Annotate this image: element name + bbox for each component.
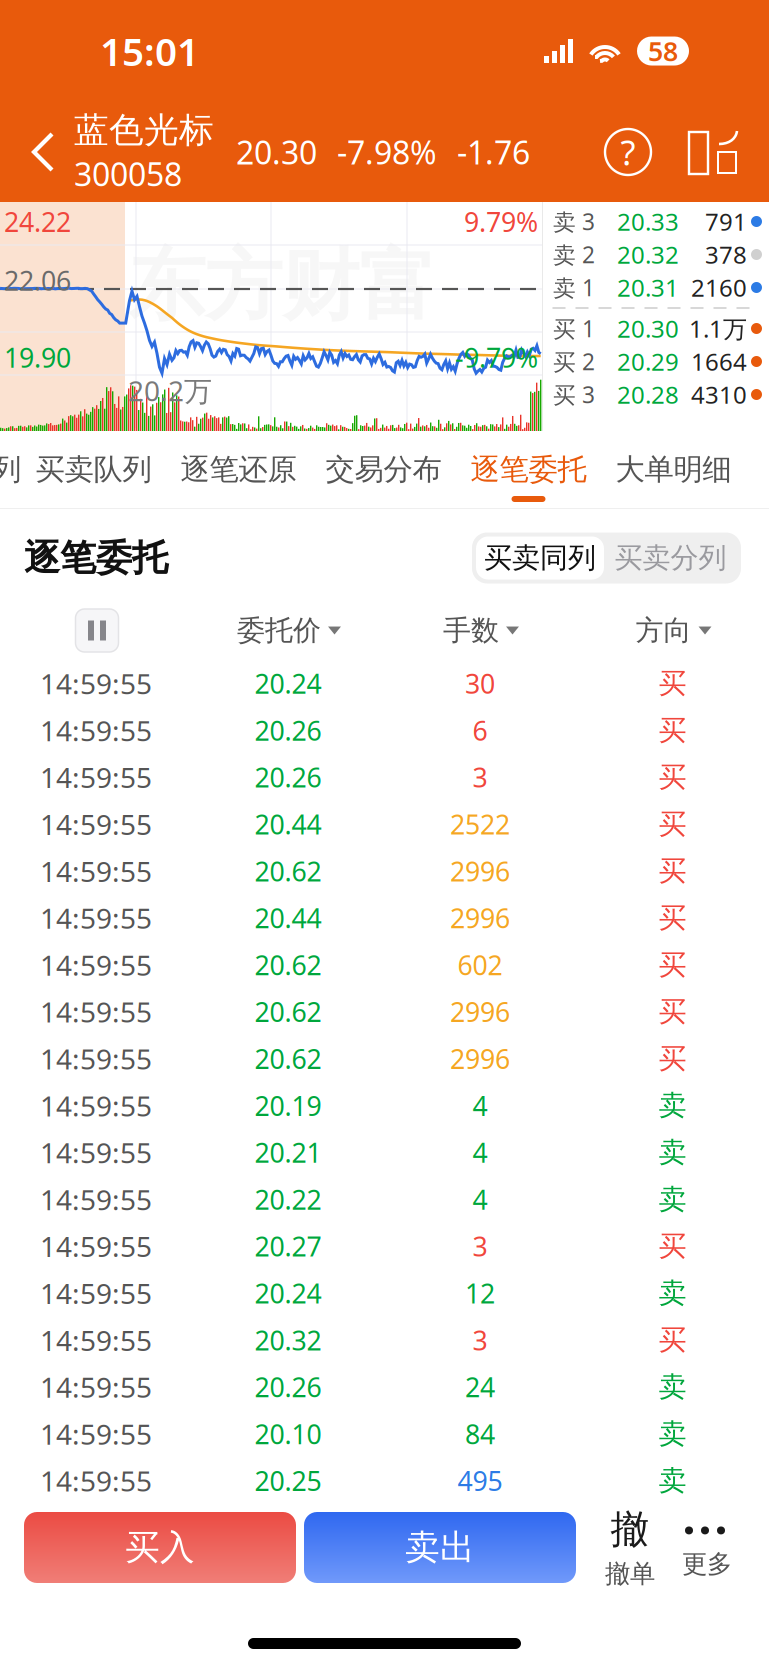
staticText: -1.76: [457, 131, 530, 173]
staticText: 交易分布: [325, 451, 441, 487]
staticText: 14:59:55: [40, 665, 152, 702]
button[interactable]: 大单明细: [601, 431, 746, 508]
staticText: 20.33: [617, 206, 679, 237]
staticText: 20.31: [617, 272, 679, 303]
staticText: 20.62: [254, 947, 321, 982]
staticText: 20.10: [254, 1416, 321, 1451]
staticText: 买: [658, 1323, 686, 1357]
staticText: 卖: [658, 1135, 686, 1170]
staticText: 14:59:55: [40, 1087, 152, 1124]
button[interactable]: 买卖分列: [604, 536, 737, 579]
staticText: 20.19: [254, 1088, 321, 1123]
staticText: 卖: [658, 1088, 686, 1123]
staticText: 买 1: [553, 313, 595, 343]
staticText: 12: [465, 1275, 495, 1311]
staticText: 20.22: [254, 1182, 321, 1217]
staticText: 买: [658, 995, 686, 1029]
staticText: 卖 2: [553, 239, 595, 269]
button[interactable]: 方向: [635, 613, 711, 648]
staticText: 买: [658, 1041, 686, 1076]
button[interactable]: 委托价: [237, 613, 341, 648]
staticText: 20.2万: [128, 372, 212, 409]
staticText: 20.29: [617, 346, 679, 377]
staticText: 4: [472, 1135, 487, 1170]
staticText: 30: [465, 666, 495, 701]
staticText: 手数: [443, 613, 499, 648]
staticText: 买: [658, 948, 686, 982]
staticText: 买入: [125, 1526, 195, 1569]
button[interactable]: 买卖同列: [476, 536, 604, 579]
staticText: 20.44: [254, 900, 321, 936]
staticText: 20.24: [254, 666, 321, 701]
staticText: 4310: [691, 379, 747, 410]
staticText: 3: [472, 1322, 487, 1358]
staticText: 20.24: [254, 1275, 321, 1311]
button[interactable]: 更多: [667, 1515, 747, 1579]
staticText: 1664: [691, 346, 747, 377]
staticText: 14:59:55: [40, 1134, 152, 1171]
button[interactable]: 买卖队列: [21, 431, 166, 508]
button[interactable]: Help: [605, 129, 651, 175]
staticText: 15:01: [100, 25, 199, 77]
staticText: 602: [457, 947, 502, 982]
staticText: 22.06: [4, 263, 71, 298]
staticText: 58: [648, 33, 678, 69]
staticText: 4: [472, 1182, 487, 1217]
staticText: 20.25: [254, 1463, 321, 1498]
staticText: 1.1万: [689, 313, 747, 344]
button[interactable]: 撤: [593, 1506, 667, 1589]
staticText: 卖: [658, 1182, 686, 1217]
staticText: 14:59:55: [40, 1275, 152, 1312]
staticText: 2996: [450, 853, 510, 889]
staticText: 委托价: [237, 613, 321, 648]
staticText: 买: [658, 901, 686, 935]
staticText: 买 3: [553, 379, 595, 409]
staticText: 20.27: [254, 1228, 321, 1264]
staticText: 撤单: [605, 1558, 655, 1589]
staticText: 20.30: [617, 313, 679, 344]
staticText: -7.98%: [337, 131, 437, 173]
staticText: 2996: [450, 1041, 510, 1076]
staticText: 14:59:55: [40, 1228, 152, 1265]
staticText: 3: [472, 759, 487, 795]
staticText: 84: [465, 1416, 495, 1451]
button[interactable]: Pause: [75, 609, 118, 652]
button[interactable]: 卖出: [304, 1512, 576, 1583]
staticText: 3: [472, 1228, 487, 1264]
staticText: 买: [658, 666, 686, 701]
staticText: 495: [457, 1463, 502, 1498]
staticText: 14:59:55: [40, 1181, 152, 1218]
staticText: 买 2: [553, 346, 595, 376]
staticText: 4: [472, 1088, 487, 1123]
staticText: 大单明细: [615, 451, 731, 487]
staticText: 卖: [658, 1276, 686, 1310]
staticText: 卖: [658, 1417, 686, 1451]
staticText: 买: [658, 854, 686, 888]
staticText: 买卖队列: [35, 451, 151, 487]
staticText: 14:59:55: [40, 899, 152, 937]
staticText: 蓝色光标: [74, 109, 214, 152]
staticText: 20.32: [254, 1322, 321, 1358]
button[interactable]: 买入: [24, 1512, 296, 1583]
staticText: 20.62: [254, 853, 321, 889]
staticText: 更多: [682, 1548, 732, 1579]
button[interactable]: 逐笔委托: [456, 431, 601, 508]
staticText: 买卖分列: [614, 541, 726, 575]
button[interactable]: 交易分布: [311, 431, 456, 508]
staticText: 378: [705, 239, 747, 270]
staticText: 方向: [635, 613, 691, 648]
button[interactable]: 手数: [443, 613, 519, 648]
button[interactable]: 逐笔还原: [166, 431, 311, 508]
staticText: 14:59:55: [40, 946, 152, 983]
staticText: 20.26: [254, 1369, 321, 1405]
staticText: 19.90: [4, 340, 71, 375]
staticText: 20.30: [236, 131, 317, 173]
staticText: 逐笔委托: [24, 536, 168, 580]
button[interactable]: Back: [12, 116, 74, 188]
button[interactable]: Share: [687, 126, 739, 178]
staticText: 逐笔还原: [180, 451, 296, 487]
staticText: 20.26: [254, 759, 321, 795]
staticText: 撤: [610, 1506, 649, 1553]
staticText: 20.32: [617, 239, 679, 270]
staticText: 24.22: [4, 204, 71, 239]
